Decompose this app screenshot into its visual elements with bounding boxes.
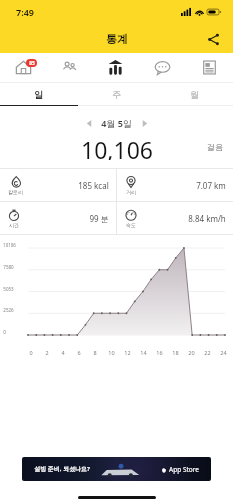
button[interactable]: Home — [0, 53, 46, 82]
staticText: 5053 — [3, 286, 14, 292]
button[interactable]: 거리 — [117, 169, 233, 201]
button[interactable]: 주 — [77, 83, 155, 105]
staticText: App Store — [169, 465, 199, 474]
button[interactable]: 설빙 준비, 되셨나요? — [22, 457, 211, 481]
button[interactable]: News — [186, 53, 233, 82]
staticText: 18 — [172, 349, 179, 356]
staticText: 85 — [29, 60, 35, 67]
staticText: 2526 — [3, 307, 14, 313]
staticText: 7580 — [3, 264, 14, 270]
staticText: 속도 — [126, 222, 136, 228]
staticText: 185 kcal — [78, 180, 109, 191]
staticText: 통계 — [106, 32, 128, 46]
staticText: 99 분 — [89, 213, 109, 224]
button[interactable]: Chat — [139, 53, 186, 82]
button[interactable]: 월 — [155, 83, 233, 105]
staticText: 22 — [204, 349, 211, 356]
staticText: 7.07 km — [196, 180, 226, 191]
staticText: 2 — [45, 349, 49, 356]
button[interactable]: Statistics — [92, 53, 139, 82]
staticText: 거리 — [126, 189, 136, 195]
staticText: 4월 5일 — [101, 117, 132, 129]
staticText: 16 — [156, 349, 163, 356]
button[interactable]: Friends — [46, 53, 92, 82]
staticText: 4 — [61, 349, 65, 356]
staticText: 칼로리 — [8, 189, 23, 195]
staticText: 20 — [188, 349, 195, 356]
staticText: 주 — [112, 89, 121, 100]
staticText: 10106 — [3, 242, 16, 248]
staticText: 0 — [3, 329, 6, 335]
button[interactable]: Share — [201, 27, 225, 51]
button[interactable]: 시간 — [0, 202, 116, 234]
staticText: 7:49 — [16, 6, 34, 18]
staticText: 14 — [140, 349, 147, 356]
staticText: 설빙 준비, 되셨나요? — [34, 465, 90, 473]
staticText: 0 — [29, 349, 33, 356]
staticText: 걸음 — [207, 142, 223, 152]
button[interactable]: 칼로리 — [0, 169, 116, 201]
staticText: 시간 — [9, 222, 19, 228]
button[interactable]: 일 — [0, 83, 77, 105]
button[interactable]: 속도 — [117, 202, 233, 234]
staticText: 일 — [34, 89, 43, 100]
button[interactable]: Next day — [136, 115, 152, 131]
staticText: 8.84 km/h — [188, 213, 226, 224]
staticText: 8 — [93, 349, 97, 356]
staticText: 10 — [108, 349, 115, 356]
button[interactable]: Previous day — [81, 115, 97, 131]
staticText: 10,106 — [81, 134, 153, 160]
staticText: 월 — [190, 89, 199, 100]
staticText: 24 — [220, 349, 227, 356]
staticText: 6 — [77, 349, 81, 356]
staticText: 12 — [124, 349, 131, 356]
